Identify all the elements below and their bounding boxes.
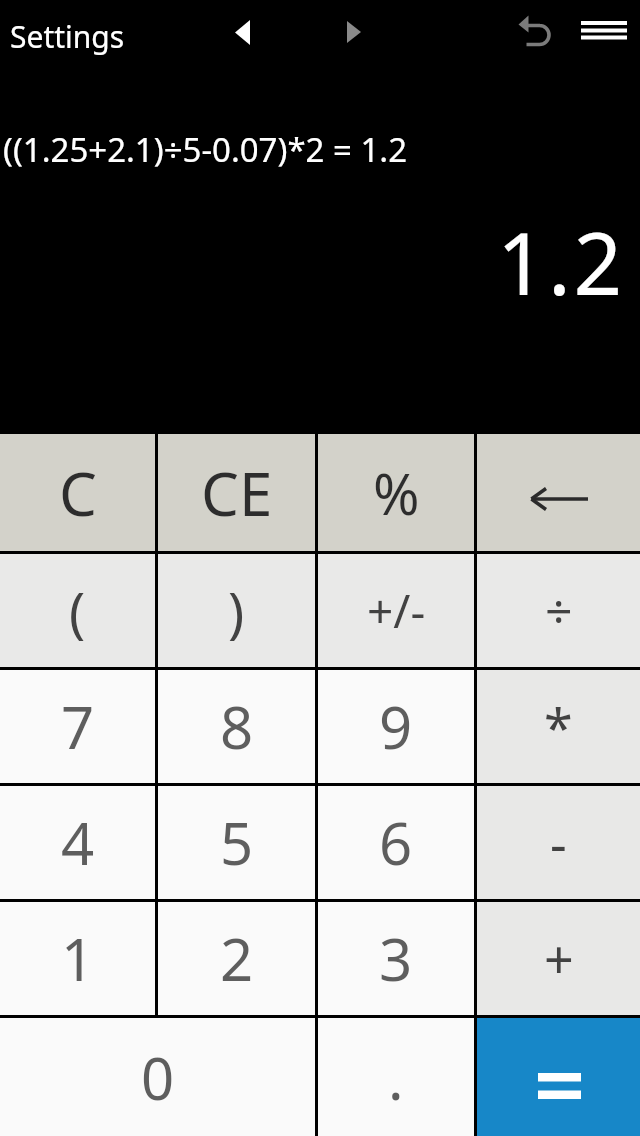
staticText: 9 bbox=[379, 687, 413, 766]
button[interactable]: . bbox=[318, 1018, 474, 1136]
button[interactable]: 1 bbox=[0, 902, 155, 1015]
button[interactable]: 4 bbox=[0, 786, 155, 899]
button[interactable] bbox=[576, 12, 632, 48]
staticText: C bbox=[59, 452, 97, 534]
button[interactable]: + bbox=[477, 902, 640, 1015]
button[interactable]: 0 bbox=[0, 1018, 315, 1136]
button[interactable]: ( bbox=[0, 554, 155, 667]
staticText: 0 bbox=[141, 1038, 175, 1117]
staticText: 2 bbox=[220, 919, 254, 998]
staticText: % bbox=[373, 455, 420, 531]
button[interactable] bbox=[512, 8, 556, 52]
button[interactable]: * bbox=[477, 670, 640, 783]
button[interactable]: 6 bbox=[318, 786, 474, 899]
staticText: ÷ bbox=[545, 578, 573, 643]
button[interactable]: ) bbox=[158, 554, 315, 667]
button[interactable] bbox=[477, 1018, 640, 1136]
staticText: . bbox=[388, 1038, 404, 1117]
staticText: CE bbox=[201, 452, 273, 534]
button[interactable]: % bbox=[318, 434, 474, 551]
button[interactable]: - bbox=[477, 786, 640, 899]
staticText: - bbox=[550, 807, 567, 878]
button[interactable]: Settings bbox=[10, 16, 125, 57]
button[interactable] bbox=[340, 10, 380, 54]
button[interactable] bbox=[477, 434, 640, 551]
button[interactable]: 5 bbox=[158, 786, 315, 899]
staticText: + bbox=[544, 923, 574, 994]
staticText: 5 bbox=[220, 803, 254, 882]
staticText: 3 bbox=[379, 919, 413, 998]
button[interactable] bbox=[225, 10, 265, 54]
staticText: ((1.25+2.1)÷5-0.07)*2 = 1.2 bbox=[3, 127, 408, 172]
button[interactable]: 9 bbox=[318, 670, 474, 783]
staticText: 7 bbox=[61, 687, 95, 766]
button[interactable]: 3 bbox=[318, 902, 474, 1015]
button[interactable]: ÷ bbox=[477, 554, 640, 667]
staticText: 1.2 bbox=[497, 204, 625, 320]
button[interactable]: C bbox=[0, 434, 155, 551]
button[interactable]: 7 bbox=[0, 670, 155, 783]
staticText: +/- bbox=[367, 579, 426, 642]
staticText: ( bbox=[69, 574, 86, 648]
staticText: 8 bbox=[220, 687, 254, 766]
staticText: 6 bbox=[379, 803, 413, 882]
button[interactable]: 8 bbox=[158, 670, 315, 783]
staticText: 1 bbox=[61, 919, 95, 998]
button[interactable]: +/- bbox=[318, 554, 474, 667]
staticText: ) bbox=[228, 574, 245, 648]
button[interactable]: 2 bbox=[158, 902, 315, 1015]
staticText: 4 bbox=[61, 803, 95, 882]
staticText: * bbox=[544, 691, 573, 762]
button[interactable]: CE bbox=[158, 434, 315, 551]
